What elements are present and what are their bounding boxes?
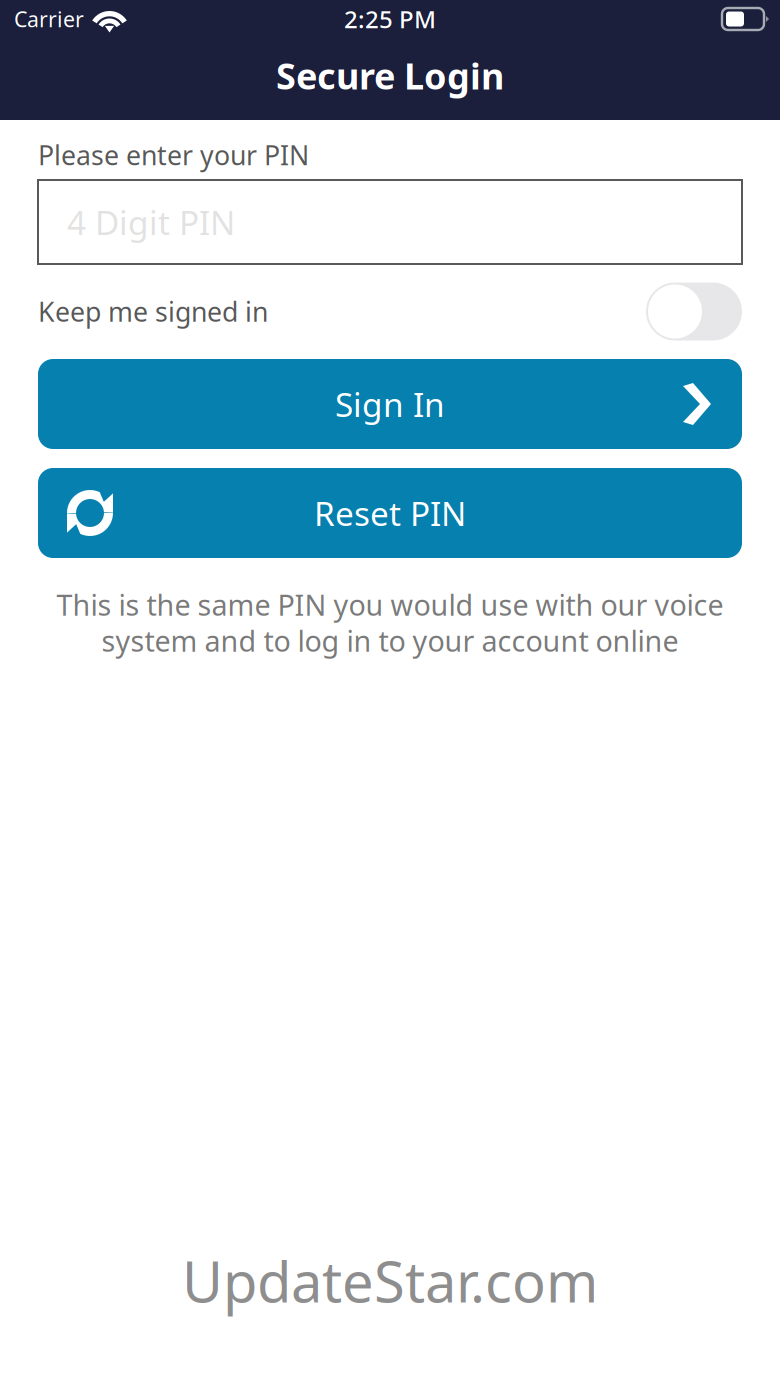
staticText: Please enter your PIN <box>38 137 309 173</box>
staticText: This is the same PIN you would use with … <box>56 585 723 624</box>
button[interactable]: Reset PIN <box>38 468 742 558</box>
staticText: UpdateStar.com <box>182 1243 598 1319</box>
button[interactable]: 4 Digit PIN <box>38 180 742 264</box>
button[interactable]: Keep me signed in <box>646 282 742 340</box>
staticText: Sign In <box>335 381 445 427</box>
staticText: Carrier <box>14 4 84 34</box>
staticText: system and to log in to your account onl… <box>101 621 678 660</box>
staticText: 4 Digit PIN <box>67 199 235 245</box>
button[interactable]: Sign In <box>38 359 742 449</box>
staticText: 2:25 PM <box>344 3 436 35</box>
staticText: Secure Login <box>276 51 504 100</box>
staticText: Reset PIN <box>314 490 466 536</box>
staticText: Keep me signed in <box>38 293 268 330</box>
